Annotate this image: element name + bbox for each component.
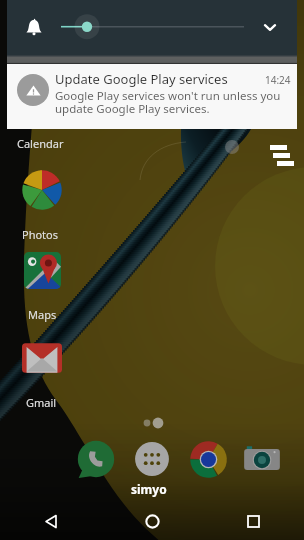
button[interactable]: Maps <box>20 248 64 292</box>
staticText: Update Google Play services <box>55 70 228 88</box>
button[interactable]: Photos <box>20 168 64 212</box>
button[interactable]: Update Google Play services <box>7 64 297 129</box>
button[interactable]: Gmail <box>20 336 64 380</box>
button[interactable]: Camera <box>240 437 284 481</box>
button[interactable]: Chrome <box>186 437 230 481</box>
staticText: simyo <box>131 481 167 497</box>
staticText: Maps <box>28 307 57 322</box>
staticText: Gmail <box>26 395 57 410</box>
staticText: Calendar <box>17 136 64 151</box>
button[interactable]: Notifications <box>20 13 48 41</box>
button[interactable]: Recent apps <box>203 502 304 540</box>
staticText: 14:24 <box>265 73 291 87</box>
button[interactable]: Back <box>0 502 102 540</box>
staticText: Photos <box>22 227 59 242</box>
button[interactable]: WhatsApp <box>74 437 118 481</box>
button[interactable]: All apps <box>130 437 174 481</box>
button[interactable]: Home <box>102 502 203 540</box>
staticText: Google Play services won't run unless yo… <box>55 88 281 117</box>
button[interactable]: News widget <box>268 142 294 168</box>
button[interactable]: Expand quick settings <box>256 13 284 41</box>
